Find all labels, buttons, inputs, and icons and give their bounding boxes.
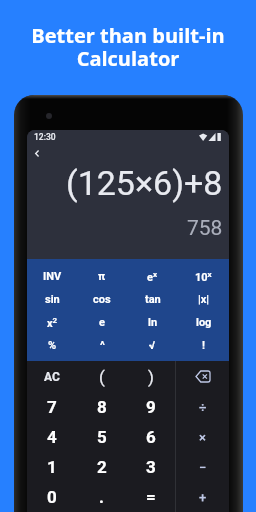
button[interactable]: 10x [178,265,229,288]
button[interactable]: 4 [27,422,77,452]
button[interactable]: AC [27,361,77,392]
staticText: ! [202,339,205,352]
staticText: (125×6)+8 [66,163,223,203]
button[interactable]: ^ [77,334,127,357]
button[interactable]: π [77,265,127,288]
staticText: Better than built-in Calculator [0,22,256,72]
staticText: 2 [97,457,107,477]
staticText: cos [93,293,111,306]
staticText: × [199,430,206,445]
staticText: 0 [47,487,57,507]
staticText: tan [145,293,161,306]
staticText: sin [45,293,60,306]
button[interactable]: Back [28,144,46,162]
staticText: % [48,339,57,352]
staticText: AC [44,370,60,384]
button[interactable]: log [178,311,229,334]
button[interactable]: ( [77,361,126,392]
button[interactable]: |x| [178,288,229,311]
button[interactable]: 5 [77,422,126,452]
staticText: log [196,316,212,329]
staticText: π [98,270,106,283]
staticText: ex [147,270,158,284]
button[interactable]: + [176,482,229,512]
staticText: ^ [100,339,105,352]
staticText: 12:30 [34,132,56,142]
staticText: 7 [47,397,57,417]
button[interactable]: ) [126,361,175,392]
staticText: ( [99,367,105,387]
button[interactable]: ln [127,311,178,334]
staticText: INV [43,270,62,283]
button[interactable]: 1 [27,452,77,482]
button[interactable]: % [27,334,77,357]
button[interactable]: 3 [126,452,175,482]
staticText: ln [148,316,158,329]
staticText: . [99,487,104,507]
staticText: ÷ [199,400,207,415]
button[interactable]: × [176,422,229,452]
staticText: 3 [146,457,156,477]
button[interactable]: e [77,311,127,334]
staticText: ) [148,367,154,387]
button[interactable]: 7 [27,392,77,422]
staticText: 9 [146,397,156,417]
button[interactable]: . [77,482,126,512]
staticText: √ [149,339,156,352]
staticText: x2 [47,316,58,330]
button[interactable]: 0 [27,482,77,512]
button[interactable]: 8 [77,392,126,422]
staticText: 5 [97,427,107,447]
button[interactable]: Delete [176,361,229,392]
button[interactable]: ÷ [176,392,229,422]
staticText: 4 [47,427,57,447]
staticText: 1 [47,457,57,477]
button[interactable]: ! [178,334,229,357]
staticText: 8 [97,397,107,417]
button[interactable]: √ [127,334,178,357]
staticText: − [199,460,207,475]
button[interactable]: = [126,482,175,512]
staticText: = [146,487,156,507]
staticText: + [199,490,207,505]
staticText: |x| [198,293,210,306]
staticText: 10x [195,270,212,284]
button[interactable]: INV [27,265,77,288]
button[interactable]: 9 [126,392,175,422]
staticText: e [99,316,105,329]
button[interactable]: sin [27,288,77,311]
button[interactable]: ex [127,265,178,288]
button[interactable]: cos [77,288,127,311]
button[interactable]: tan [127,288,178,311]
button[interactable]: 6 [126,422,175,452]
staticText: 6 [146,427,156,447]
button[interactable]: 2 [77,452,126,482]
staticText: 758 [187,216,223,241]
button[interactable]: − [176,452,229,482]
button[interactable]: x2 [27,311,77,334]
